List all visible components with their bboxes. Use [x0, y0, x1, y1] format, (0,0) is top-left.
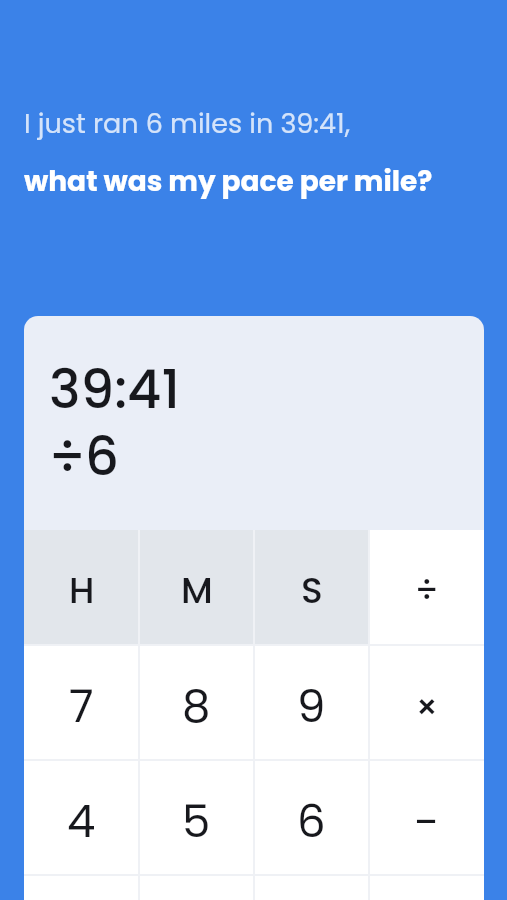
button[interactable]: 8 — [139, 645, 254, 760]
button[interactable]: + — [369, 875, 484, 900]
button[interactable]: ÷ — [369, 530, 484, 645]
button[interactable]: – — [369, 760, 484, 875]
staticText: 9 — [297, 675, 326, 738]
staticText: what was my pace per mile? — [24, 162, 433, 201]
button[interactable]: S — [254, 530, 369, 645]
staticText: H — [69, 565, 95, 615]
staticText: × — [415, 683, 439, 731]
button[interactable]: 3 — [254, 875, 369, 900]
button[interactable]: 6 — [254, 760, 369, 875]
button[interactable]: 9 — [254, 645, 369, 760]
staticText: 4 — [67, 790, 96, 853]
staticText: 6 — [297, 790, 326, 853]
button[interactable]: 4 — [24, 760, 139, 875]
staticText: ÷ — [415, 566, 439, 614]
staticText: 5 — [182, 790, 211, 853]
staticText: 8 — [182, 675, 211, 738]
staticText: 39:41 ÷6 — [49, 352, 180, 494]
staticText: S — [301, 565, 323, 615]
button[interactable]: 1 — [24, 875, 139, 900]
button[interactable]: H — [24, 530, 139, 645]
button[interactable]: M — [139, 530, 254, 645]
button[interactable]: 2 — [139, 875, 254, 900]
staticText: – — [414, 798, 439, 846]
staticText: M — [181, 565, 213, 615]
staticText: 7 — [69, 675, 94, 738]
staticText: I just ran 6 miles in 39:41, — [24, 105, 351, 143]
button[interactable]: 5 — [139, 760, 254, 875]
button[interactable]: 7 — [24, 645, 139, 760]
button[interactable]: × — [369, 645, 484, 760]
